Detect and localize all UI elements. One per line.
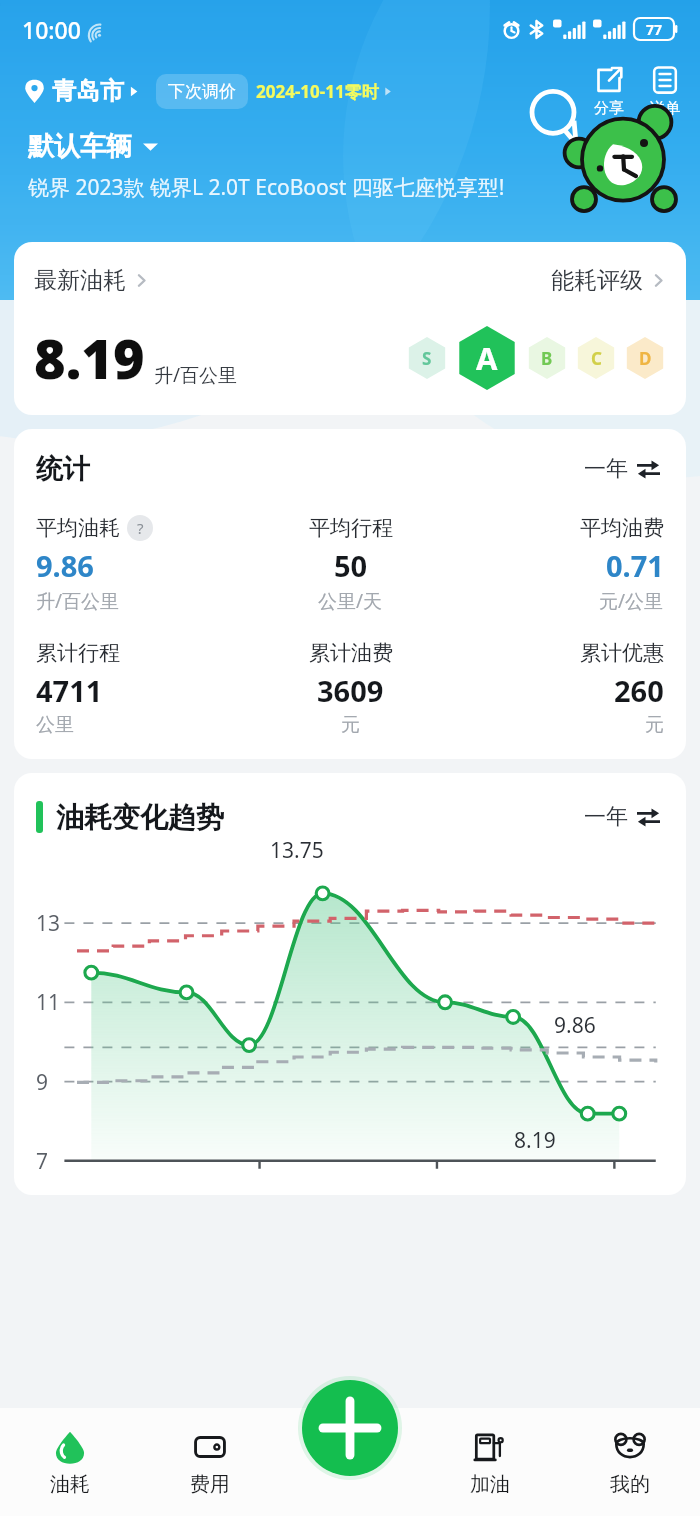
staticText: 默认车辆 xyxy=(28,130,132,163)
staticText: 0.71 xyxy=(606,546,664,585)
staticText: 公里/天 xyxy=(318,588,383,614)
staticText: 累计油费 xyxy=(309,640,393,666)
button[interactable]: 记一笔 xyxy=(298,1376,402,1484)
staticText: 升/百公里 xyxy=(154,362,238,388)
button[interactable]: 青岛市 xyxy=(22,70,140,112)
staticText: 4711 xyxy=(36,671,103,710)
staticText: 能耗评级 xyxy=(551,266,643,295)
staticText: 下次调价 xyxy=(168,81,236,102)
staticText: 元 xyxy=(341,713,360,737)
button[interactable]: 我的 xyxy=(560,1408,700,1516)
button[interactable]: 费用 xyxy=(140,1408,280,1516)
staticText: 11 xyxy=(36,988,61,1017)
staticText: 一年 xyxy=(584,455,628,483)
staticText: 公里 xyxy=(36,713,74,737)
staticText: 青岛市 xyxy=(52,76,124,106)
button[interactable]: Share xyxy=(590,65,628,118)
staticText: 加油 xyxy=(470,1472,510,1497)
staticText: 9.86 xyxy=(36,546,94,585)
staticText: 一年 xyxy=(584,803,628,831)
button[interactable]: 一年 xyxy=(580,451,664,487)
staticText: 3609 xyxy=(317,671,384,710)
staticText: B xyxy=(541,347,553,370)
staticText: 最新油耗 xyxy=(34,266,126,295)
staticText: 油耗变化趋势 xyxy=(56,800,224,835)
staticText: 平均油费 xyxy=(580,515,664,541)
staticText: 9 xyxy=(36,1068,49,1097)
staticText: 油耗 xyxy=(50,1472,90,1497)
staticText: 升/百公里 xyxy=(36,588,120,614)
staticText: 平均油耗 xyxy=(36,515,120,541)
button[interactable]: 下次调价 xyxy=(156,74,393,109)
staticText: 累计行程 xyxy=(36,640,120,666)
staticText: 8.19 xyxy=(514,1126,556,1155)
staticText: 费用 xyxy=(190,1472,230,1497)
staticText: A xyxy=(476,337,498,379)
button[interactable]: 最新油耗 xyxy=(34,262,149,299)
button[interactable]: 能耗评级 xyxy=(551,262,666,299)
staticText: 13.75 xyxy=(270,836,324,865)
staticText: 50 xyxy=(334,546,368,585)
button[interactable]: 一年 xyxy=(580,799,664,835)
staticText: 13 xyxy=(36,909,61,938)
button[interactable]: 默认车辆 xyxy=(28,128,158,165)
staticText: 分享 xyxy=(594,99,624,118)
staticText: 9.86 xyxy=(554,1011,596,1040)
staticText: 2024-10-11零时 xyxy=(256,80,379,103)
button[interactable]: 加油 xyxy=(420,1408,560,1516)
staticText: 元 xyxy=(645,713,664,737)
staticText: D xyxy=(639,347,652,370)
staticText: 260 xyxy=(614,671,664,710)
button[interactable]: 油耗 xyxy=(0,1408,140,1516)
staticText: 我的 xyxy=(610,1472,650,1497)
button[interactable]: 帮助 xyxy=(127,515,153,541)
staticText: 10:00 xyxy=(22,14,81,45)
staticText: S xyxy=(422,347,432,370)
staticText: 锐界 2023款 锐界L 2.0T EcoBoost 四驱七座悦享型! xyxy=(28,173,505,202)
button[interactable]: Details xyxy=(646,65,684,118)
staticText: 8.19 xyxy=(34,321,145,395)
staticText: C xyxy=(591,347,602,370)
staticText: 累计优惠 xyxy=(580,640,664,666)
staticText: 7 xyxy=(36,1147,49,1176)
staticText: 平均行程 xyxy=(309,515,393,541)
staticText: 77 xyxy=(646,20,663,39)
staticText: ? xyxy=(137,518,144,538)
staticText: 元/公里 xyxy=(599,588,664,614)
staticText: 统计 xyxy=(36,452,90,486)
staticText: 详单 xyxy=(650,99,680,118)
